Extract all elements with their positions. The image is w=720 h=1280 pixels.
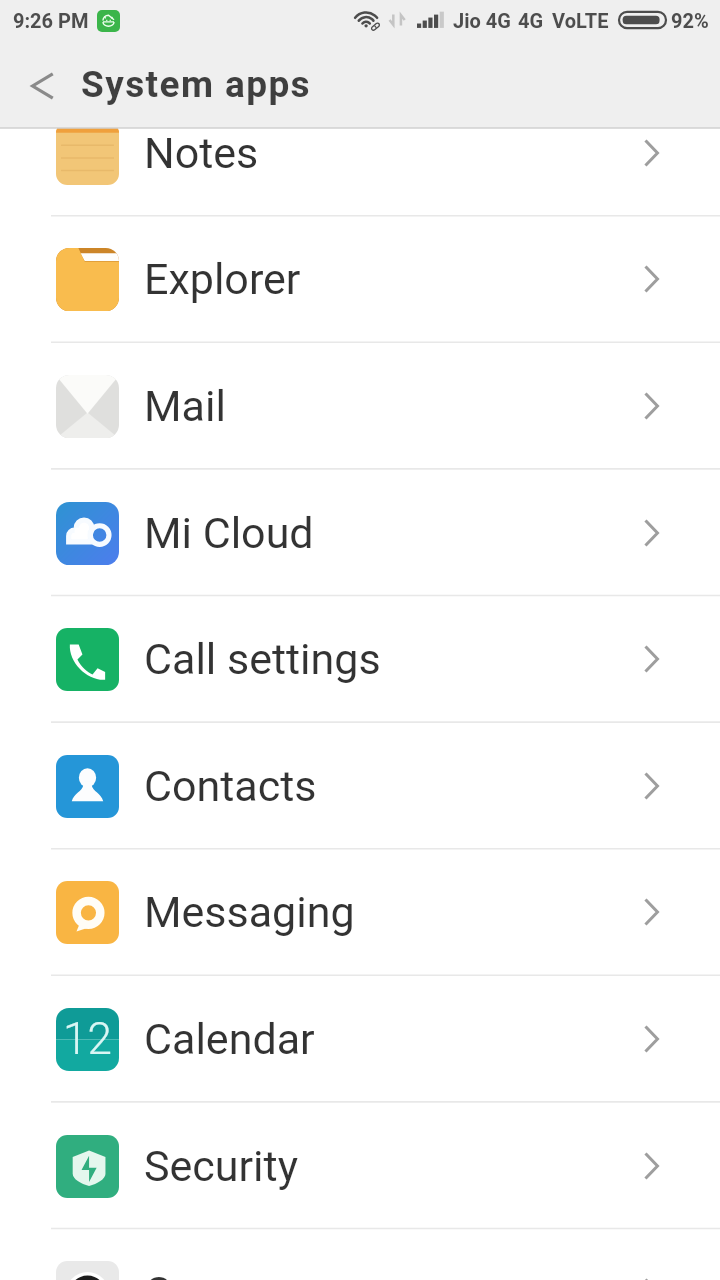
staticText: VoLTE <box>552 9 609 32</box>
button[interactable]: 12 <box>0 976 720 1102</box>
button[interactable]: Call settings <box>0 596 720 722</box>
staticText: Camera <box>144 1267 294 1280</box>
staticText: Security <box>144 1141 298 1191</box>
button[interactable]: Contacts <box>0 723 720 849</box>
staticText: Mail <box>144 381 226 431</box>
button[interactable]: Security <box>0 1103 720 1229</box>
staticText: 92% <box>671 9 709 32</box>
button[interactable]: Mail <box>0 343 720 469</box>
staticText: System apps <box>81 63 312 106</box>
button[interactable]: Back <box>6 50 78 122</box>
button[interactable]: Mi Cloud <box>0 470 720 596</box>
staticText: 4G <box>518 9 544 32</box>
staticText: 9:26 PM <box>13 9 89 32</box>
staticText: Explorer <box>144 254 301 304</box>
button[interactable]: Camera <box>0 1229 720 1280</box>
staticText: Calendar <box>144 1014 315 1064</box>
staticText: Jio 4G <box>453 9 511 32</box>
staticText: Call settings <box>144 634 381 684</box>
staticText: Contacts <box>144 761 317 811</box>
button[interactable]: Messaging <box>0 849 720 975</box>
button[interactable]: Notes <box>0 128 720 216</box>
staticText: Notes <box>144 128 259 178</box>
staticText: Messaging <box>144 887 355 937</box>
staticText: Mi Cloud <box>144 508 314 558</box>
button[interactable]: Explorer <box>0 216 720 342</box>
staticText: 12 <box>63 1013 112 1065</box>
